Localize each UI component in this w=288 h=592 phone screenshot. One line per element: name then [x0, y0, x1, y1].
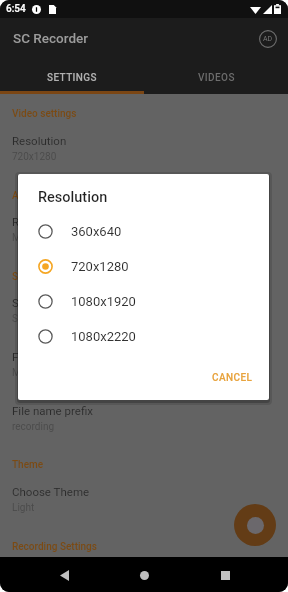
staticText: Light	[12, 502, 35, 514]
staticText: 720x1280	[71, 259, 129, 274]
staticText: Stop on shake	[12, 296, 85, 309]
staticText: recording	[12, 421, 55, 433]
staticText: Resolution	[12, 134, 67, 147]
button[interactable]: CANCEL	[204, 365, 261, 391]
staticText: VIDEOS	[198, 72, 235, 84]
button[interactable]: 360x640	[18, 214, 269, 248]
staticText: File name prefix	[12, 404, 93, 417]
button[interactable]: Choose Theme	[0, 479, 288, 515]
staticText: Resolution	[38, 189, 108, 206]
button[interactable]: Record audio	[0, 209, 288, 245]
staticText: Choose Theme	[12, 485, 90, 498]
button[interactable]: File name prefix	[0, 398, 288, 434]
staticText: SC Recorder	[13, 30, 89, 46]
button[interactable]: 720x1280	[18, 249, 269, 283]
button[interactable]: Back	[47, 558, 81, 592]
staticText: Shake sensitivity	[12, 313, 87, 325]
button[interactable]: VIDEOS	[144, 64, 288, 91]
staticText: Microphone	[12, 232, 66, 244]
button[interactable]: Remove ads	[254, 25, 282, 53]
button[interactable]: Recent apps	[208, 558, 242, 592]
staticText: 1080x1920	[71, 294, 136, 309]
button[interactable]: 1080x2220	[18, 319, 269, 353]
button[interactable]: Folder	[0, 344, 288, 380]
staticText: 360x640	[71, 224, 122, 239]
staticText: Folder	[12, 350, 45, 363]
button[interactable]: SETTINGS	[0, 64, 144, 91]
button[interactable]: Start recording	[234, 504, 276, 546]
button[interactable]: 1080x1920	[18, 284, 269, 318]
staticText: Record audio	[12, 215, 80, 228]
button[interactable]: Stop on shake	[0, 290, 288, 326]
staticText: Movies/SCR	[12, 367, 67, 379]
staticText: Stop Recording	[12, 271, 81, 283]
staticText: Video settings	[12, 108, 77, 120]
staticText: Recording Settings	[12, 541, 97, 553]
staticText: 720x1280	[12, 151, 57, 163]
staticText: 1080x2220	[71, 329, 136, 344]
staticText: Audio settings	[12, 190, 77, 202]
button[interactable]: Home	[127, 558, 161, 592]
button[interactable]: Resolution	[0, 128, 288, 164]
staticText: AD	[263, 35, 273, 43]
staticText: CANCEL	[212, 372, 253, 384]
staticText: 6:54	[6, 3, 26, 15]
staticText: SETTINGS	[47, 72, 97, 84]
staticText: Theme	[12, 459, 44, 471]
